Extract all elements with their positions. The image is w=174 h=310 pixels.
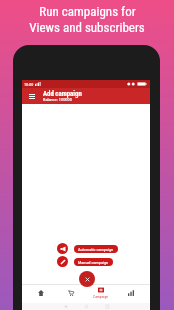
button[interactable]: Manual campaign: [74, 258, 113, 266]
staticText: Balance: 100000: [43, 97, 72, 102]
button[interactable]: Campaign: [86, 284, 116, 303]
staticText: Views and subscribers: [29, 20, 145, 35]
button[interactable]: Recent apps: [105, 304, 110, 309]
staticText: Automatic campaign: [78, 247, 114, 252]
button[interactable]: Open navigation menu: [24, 88, 40, 104]
button[interactable]: Home: [26, 284, 56, 303]
staticText: Run campaigns for: [39, 4, 136, 19]
staticText: Campaign: [93, 294, 109, 298]
staticText: Manual campaign: [78, 260, 109, 265]
button[interactable]: Back: [63, 304, 68, 309]
staticText: Add campaign: [43, 90, 82, 98]
button[interactable]: Statistics: [116, 284, 146, 303]
button[interactable]: Close campaign menu: [79, 271, 95, 287]
staticText: 10:00: [24, 82, 34, 87]
button[interactable]: Home: [84, 304, 89, 309]
button[interactable]: Cart: [56, 284, 86, 303]
button[interactable]: Automatic campaign: [74, 245, 118, 253]
button[interactable]: Manual campaign: [57, 256, 68, 267]
button[interactable]: Automatic campaign: [57, 243, 68, 254]
